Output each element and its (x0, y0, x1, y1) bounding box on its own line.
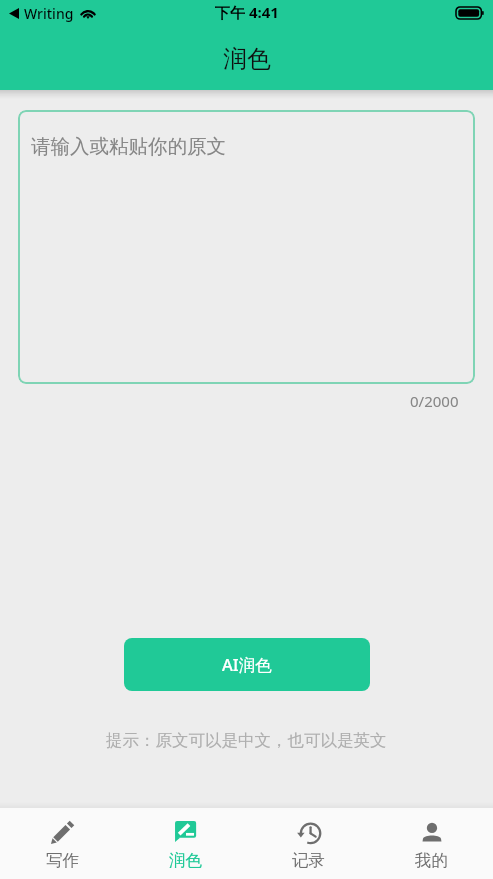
staticText: 下午 4:41 (215, 2, 279, 22)
staticText: AI润色 (222, 653, 272, 676)
button[interactable]: 请输入或粘贴你的原文 (18, 110, 475, 384)
staticText: 记录 (292, 850, 325, 868)
button[interactable]: 记录 (247, 808, 370, 879)
staticText: 0/2000 (410, 391, 459, 411)
staticText: Writing (24, 4, 74, 23)
button[interactable]: 写作 (0, 808, 124, 879)
staticText: 我的 (415, 850, 448, 868)
staticText: 润色 (169, 850, 202, 868)
staticText: 写作 (46, 850, 79, 868)
staticText: 润色 (223, 44, 271, 74)
button[interactable]: 润色 (124, 808, 247, 879)
button[interactable]: 我的 (370, 808, 493, 879)
staticText: 请输入或粘贴你的原文 (31, 134, 226, 159)
staticText: 提示：原文可以是中文，也可以是英文 (106, 730, 387, 751)
button[interactable]: AI润色 (124, 638, 370, 691)
